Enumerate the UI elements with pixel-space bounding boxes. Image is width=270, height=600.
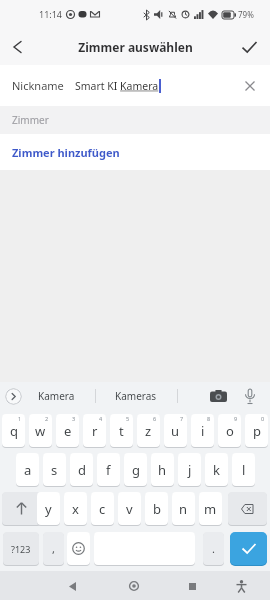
button[interactable]: p [245,414,268,447]
button[interactable]: i [191,414,214,447]
staticText: y [45,500,52,518]
button[interactable] [5,388,22,405]
staticText: f [106,461,111,479]
staticText: m [204,500,217,518]
button[interactable]: y [37,492,60,525]
staticText: g [132,461,140,479]
staticText: 4 [99,415,103,422]
button[interactable] [236,34,262,60]
button[interactable]: x [64,492,87,525]
staticText: w [35,422,46,440]
button[interactable]: g [124,453,147,486]
staticText: t [119,422,124,440]
button[interactable]: c [91,492,114,525]
button[interactable]: l [232,453,255,486]
button[interactable]: d [70,453,93,486]
staticText: x [72,500,79,518]
button[interactable]: v [118,492,141,525]
staticText: p [253,422,261,440]
button[interactable] [4,34,30,60]
button[interactable]: t [110,414,133,447]
button[interactable]: r [83,414,106,447]
staticText: l [242,461,246,479]
staticText: j [188,461,192,479]
staticText: 8 [207,415,211,422]
button[interactable] [67,532,90,565]
staticText: o [226,422,234,440]
staticText: Zimmer [12,113,49,127]
button[interactable]: u [164,414,187,447]
button[interactable]: Zimmer hinzufügen [0,134,270,170]
staticText: Zimmer auswählen [78,39,193,55]
button[interactable]: k [205,453,228,486]
button[interactable]: . [203,532,224,565]
button[interactable] [208,386,228,406]
staticText: i [201,422,205,440]
staticText: 7 [180,415,184,422]
staticText: , [52,541,55,556]
staticText: z [145,422,152,440]
staticText: q [10,422,18,440]
staticText: 1 [18,415,22,422]
button[interactable] [182,576,202,596]
button[interactable]: w [29,414,52,447]
button[interactable] [2,492,41,525]
staticText: 2 [45,415,49,422]
staticText: a [24,461,32,479]
button[interactable] [62,576,82,596]
button[interactable]: Kameras [100,382,172,410]
staticText: Kamera [38,389,75,403]
staticText: 79% [238,9,254,20]
staticText: 0 [261,415,265,422]
button[interactable]: j [178,453,201,486]
staticText: n [179,500,188,518]
staticText: 9 [234,415,238,422]
button[interactable] [240,386,260,406]
staticText: h [158,461,167,479]
button[interactable]: , [43,532,64,565]
button[interactable]: a [16,453,39,486]
staticText: k [213,461,220,479]
staticText: 6 [153,415,157,422]
button[interactable] [240,76,260,96]
staticText: . [212,541,215,556]
staticText: c [99,500,106,518]
button[interactable]: e [56,414,79,447]
button[interactable]: ?123 [3,532,39,565]
button[interactable]: o [218,414,241,447]
staticText: v [126,500,133,518]
staticText: 5 [126,415,130,422]
button[interactable]: Kamera [25,382,87,410]
button[interactable] [230,532,267,565]
staticText: Zimmer hinzufügen [12,145,120,160]
button[interactable]: h [151,453,174,486]
staticText: r [92,422,98,440]
button[interactable]: q [2,414,25,447]
staticText: 11:14 [39,8,63,20]
staticText: e [64,422,72,440]
button[interactable]: z [137,414,160,447]
button[interactable] [124,576,144,596]
staticText: u [171,422,180,440]
button[interactable] [231,576,251,596]
staticText: b [153,500,161,518]
button[interactable]: f [97,453,120,486]
staticText: ?123 [11,543,31,555]
button[interactable]: m [199,492,222,525]
staticText: d [78,461,86,479]
button[interactable]: b [145,492,168,525]
staticText: 3 [72,415,76,422]
button[interactable]: n [172,492,195,525]
button[interactable] [228,492,267,525]
staticText: Nickname [12,78,64,93]
button[interactable]: s [43,453,66,486]
staticText: Smart KI Kamera [75,79,159,93]
staticText: Kameras [115,389,157,403]
staticText: s [51,461,58,479]
